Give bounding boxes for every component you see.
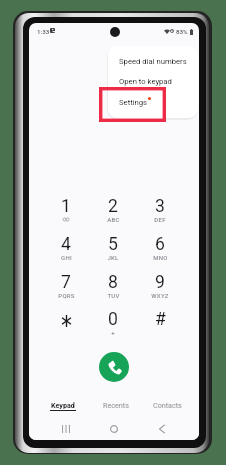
- staticText: 2: [108, 196, 118, 217]
- staticText: DEF: [154, 216, 166, 223]
- staticText: WXYZ: [151, 292, 169, 299]
- button[interactable]: 1: [45, 190, 87, 230]
- staticText: TUV: [107, 292, 120, 299]
- staticText: 1: [61, 196, 71, 217]
- button[interactable]: #: [139, 303, 181, 343]
- staticText: Settings: [119, 98, 148, 107]
- staticText: 8: [108, 272, 118, 293]
- staticText: GHI: [61, 254, 72, 261]
- staticText: 4: [61, 234, 71, 255]
- staticText: 5: [108, 234, 118, 255]
- staticText: 3: [155, 196, 165, 217]
- button[interactable]: 7: [45, 266, 87, 306]
- staticText: JKL: [107, 254, 119, 261]
- button[interactable]: Back: [152, 419, 172, 439]
- staticText: 1:33: [37, 28, 50, 35]
- button[interactable]: Star: [45, 303, 87, 343]
- button[interactable]: 9: [139, 266, 181, 306]
- button[interactable]: Contacts: [139, 397, 195, 416]
- staticText: +: [111, 329, 115, 336]
- button[interactable]: 3: [139, 190, 181, 230]
- button[interactable]: 5: [92, 228, 134, 268]
- staticText: 6: [155, 234, 165, 255]
- staticText: Keypad: [51, 401, 75, 409]
- button[interactable]: 2: [92, 190, 134, 230]
- button[interactable]: 0: [92, 303, 134, 343]
- staticText: 83%: [176, 28, 188, 35]
- staticText: Speed dial numbers: [119, 57, 187, 66]
- staticText: 9: [155, 272, 165, 293]
- staticText: PQRS: [58, 292, 75, 299]
- button[interactable]: Recents: [88, 397, 144, 416]
- staticText: ABC: [107, 216, 120, 223]
- button[interactable]: 6: [139, 228, 181, 268]
- button[interactable]: 8: [92, 266, 134, 306]
- button[interactable]: Open to keypad: [108, 71, 198, 92]
- button[interactable]: Keypad: [35, 397, 91, 416]
- staticText: 7: [61, 272, 71, 293]
- staticText: Recents: [103, 401, 129, 409]
- staticText: 0: [108, 309, 118, 330]
- staticText: #: [155, 309, 166, 330]
- staticText: Open to keypad: [119, 77, 172, 86]
- button[interactable]: Home: [104, 419, 124, 439]
- staticText: Contacts: [153, 401, 182, 409]
- button[interactable]: Speed dial numbers: [108, 51, 198, 72]
- button[interactable]: 4: [45, 228, 87, 268]
- button[interactable]: Settings: [108, 92, 198, 113]
- staticText: MNO: [153, 254, 168, 261]
- button[interactable]: Recent apps: [56, 419, 76, 439]
- button[interactable]: Call: [99, 352, 129, 382]
